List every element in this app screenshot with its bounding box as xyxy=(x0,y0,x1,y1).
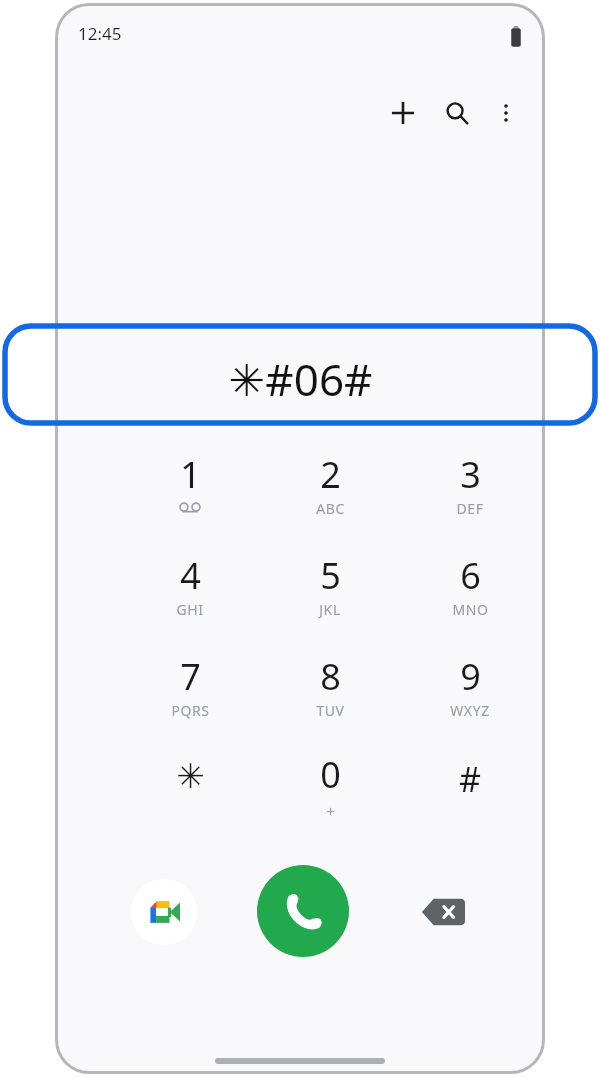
staticText: 12:45 xyxy=(78,22,122,45)
staticText: ABC xyxy=(316,499,345,518)
staticText: TUV xyxy=(316,701,345,720)
staticText: 3 xyxy=(460,450,481,499)
staticText: DEF xyxy=(456,499,484,518)
button[interactable]: Call xyxy=(257,865,349,957)
staticText: JKL xyxy=(319,600,341,619)
button[interactable]: Add contact xyxy=(381,91,425,135)
button[interactable]: More options xyxy=(484,91,528,135)
button[interactable]: 4 xyxy=(120,547,260,645)
button[interactable]: 6 xyxy=(400,547,540,645)
staticText: GHI xyxy=(176,600,204,619)
button[interactable]: Backspace xyxy=(410,879,476,945)
button[interactable]: 7 xyxy=(120,648,260,746)
button[interactable]: 8 xyxy=(260,648,400,746)
staticText: ✳#06# xyxy=(228,349,373,409)
staticText: 1 xyxy=(180,450,201,499)
staticText: 0 xyxy=(320,750,341,799)
button[interactable]: 5 xyxy=(260,547,400,645)
staticText: # xyxy=(459,756,481,802)
staticText: ✳ xyxy=(176,756,205,796)
staticText: 7 xyxy=(180,652,201,701)
staticText: PQRS xyxy=(171,701,210,720)
staticText: 6 xyxy=(460,551,481,600)
button[interactable]: Video call with Meet xyxy=(131,879,197,945)
button[interactable]: 1 xyxy=(120,446,260,544)
button[interactable]: # xyxy=(400,746,540,844)
button[interactable]: 3 xyxy=(400,446,540,544)
button[interactable]: ✳ xyxy=(120,746,260,844)
staticText: 5 xyxy=(320,551,341,600)
button[interactable]: 0 xyxy=(260,746,400,844)
button[interactable]: 9 xyxy=(400,648,540,746)
button[interactable]: ✳#06# xyxy=(58,329,542,429)
button[interactable]: 2 xyxy=(260,446,400,544)
staticText: 4 xyxy=(180,551,201,600)
staticText: 8 xyxy=(320,652,341,701)
staticText: + xyxy=(326,801,335,821)
staticText: WXYZ xyxy=(450,701,490,720)
button[interactable]: Search xyxy=(435,91,479,135)
staticText: 9 xyxy=(460,652,481,701)
staticText: 2 xyxy=(320,450,341,499)
staticText: MNO xyxy=(452,600,489,619)
